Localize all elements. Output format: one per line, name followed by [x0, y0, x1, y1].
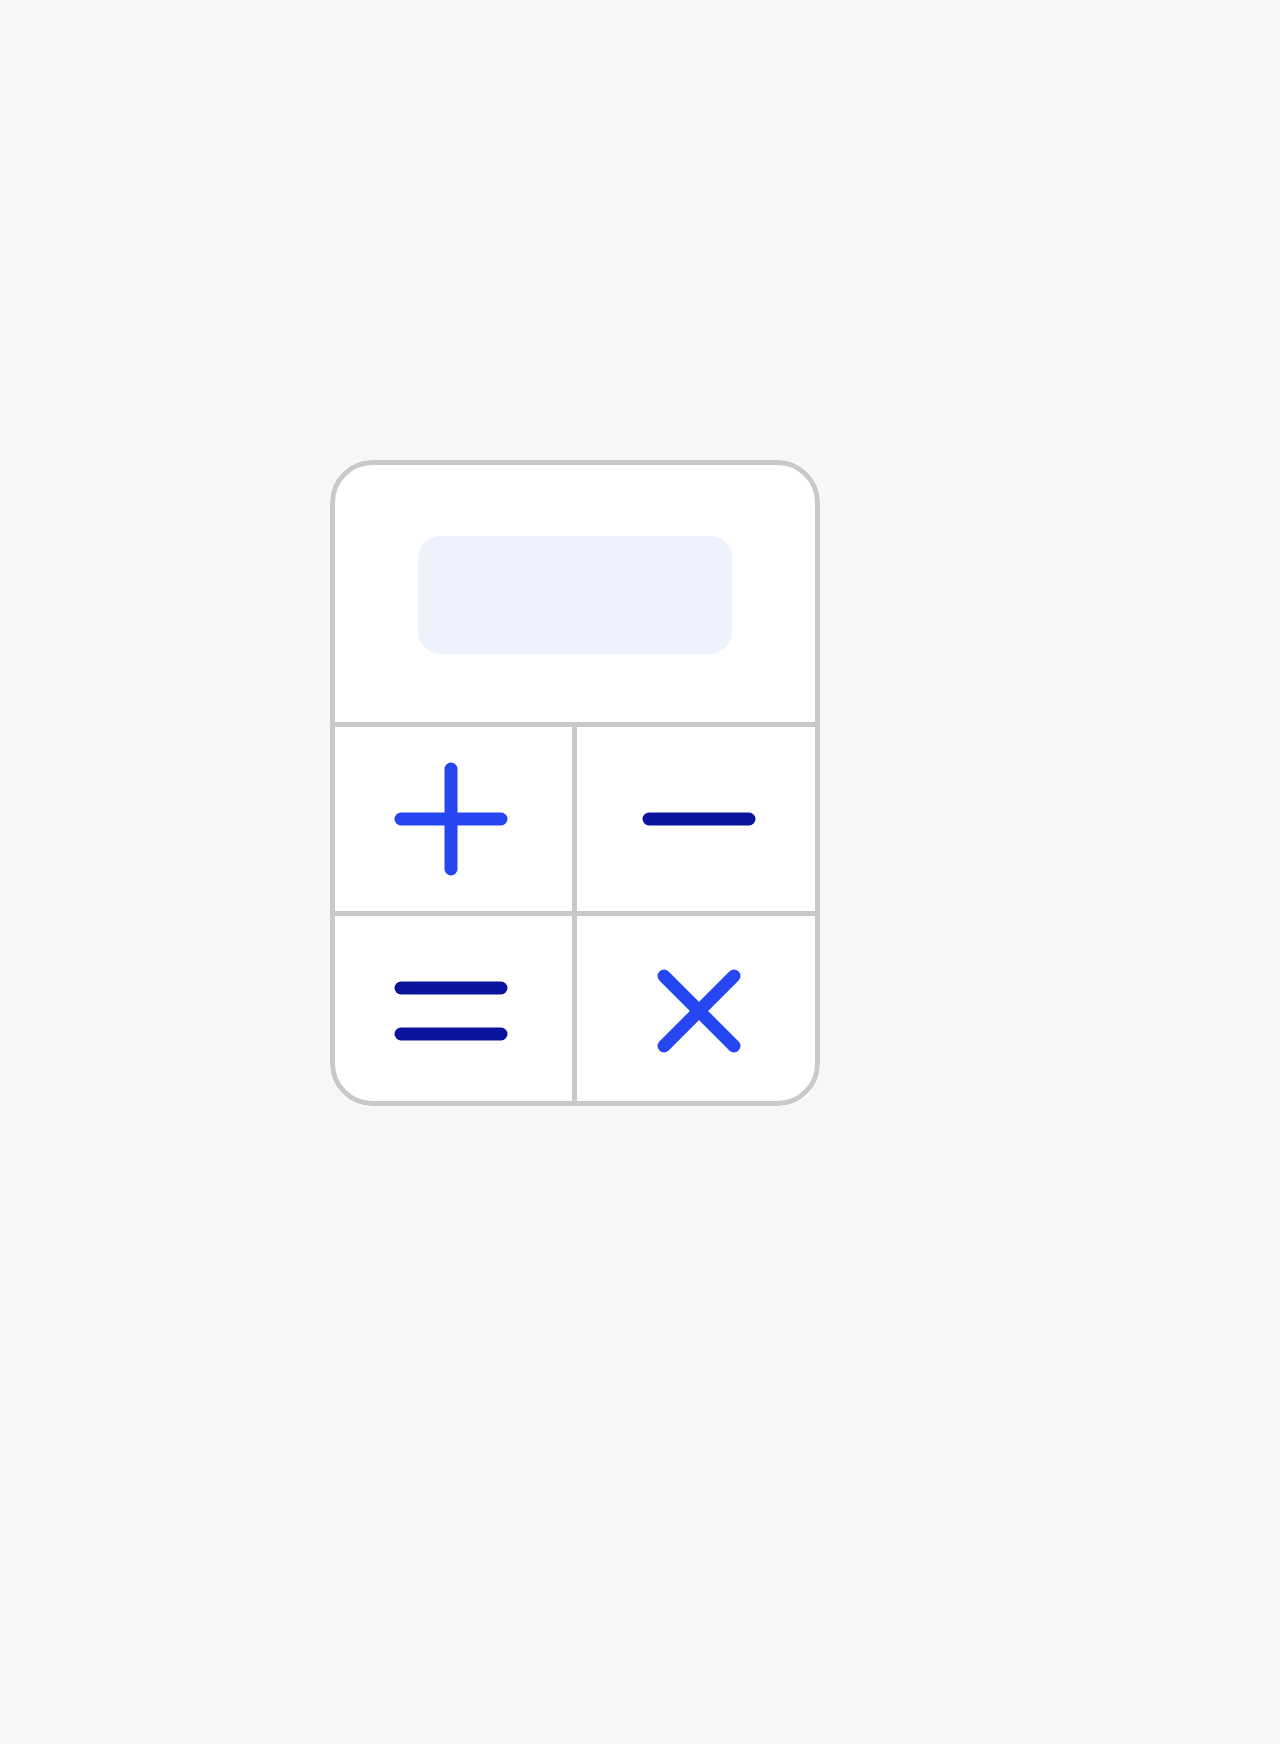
button[interactable]: Subtract	[577, 727, 820, 911]
button[interactable]: Equals	[330, 916, 572, 1106]
button[interactable]: Multiply	[577, 916, 820, 1106]
button[interactable]: Add	[330, 727, 572, 911]
